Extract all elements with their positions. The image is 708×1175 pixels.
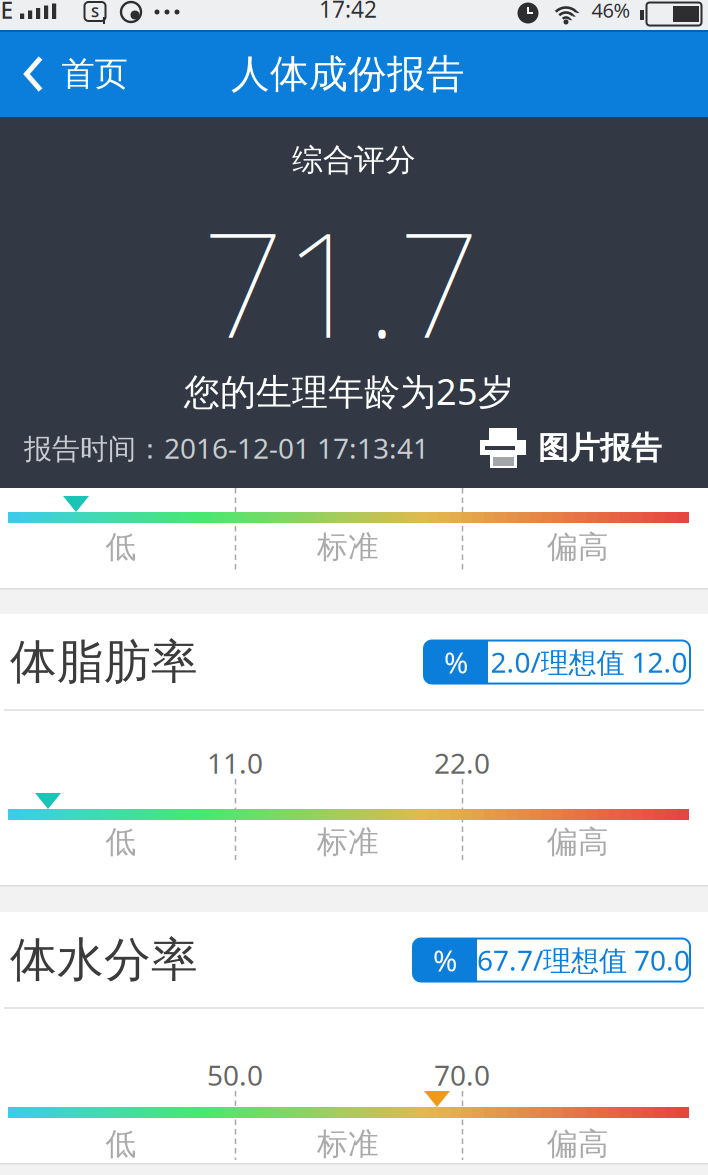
staticText: % <box>433 940 457 979</box>
staticText: 50.0 <box>207 1056 263 1094</box>
staticText: 低 <box>105 823 136 861</box>
staticText: 70.0 <box>434 1056 490 1094</box>
staticText: E <box>0 0 13 25</box>
staticText: 偏高 <box>547 823 609 861</box>
staticText: 标准 <box>317 823 379 861</box>
staticText: 综合评分 <box>292 141 416 179</box>
staticText: 46% <box>591 0 630 23</box>
staticText: 67.7/理想值 70.0 <box>477 941 690 979</box>
staticText: % <box>444 642 468 681</box>
staticText: 偏高 <box>547 1125 609 1163</box>
staticText: 11.0 <box>207 744 263 782</box>
staticText: S <box>91 2 99 21</box>
staticText: 71.7 <box>202 186 480 378</box>
staticText: 低 <box>105 1125 136 1163</box>
staticText: 标准 <box>317 1125 379 1163</box>
staticText: 体水分率 <box>10 931 198 989</box>
staticText: 标准 <box>317 528 379 566</box>
staticText: 您的生理年龄为25岁 <box>184 367 514 415</box>
staticText: 图片报告 <box>538 429 662 467</box>
button[interactable]: 首页 <box>24 44 159 104</box>
staticText: 低 <box>105 528 136 566</box>
staticText: 体脂肪率 <box>10 633 198 691</box>
staticText: 首页 <box>61 53 127 94</box>
staticText: 22.0 <box>434 744 490 782</box>
staticText: 17:42 <box>319 0 377 24</box>
staticText: 人体成份报告 <box>231 50 465 98</box>
button[interactable]: 图片报告 <box>480 428 662 468</box>
staticText: 2.0/理想值 12.0 <box>490 643 687 681</box>
staticText: 偏高 <box>547 528 609 566</box>
staticText: 报告时间：2016-12-01 17:13:41 <box>24 429 429 467</box>
